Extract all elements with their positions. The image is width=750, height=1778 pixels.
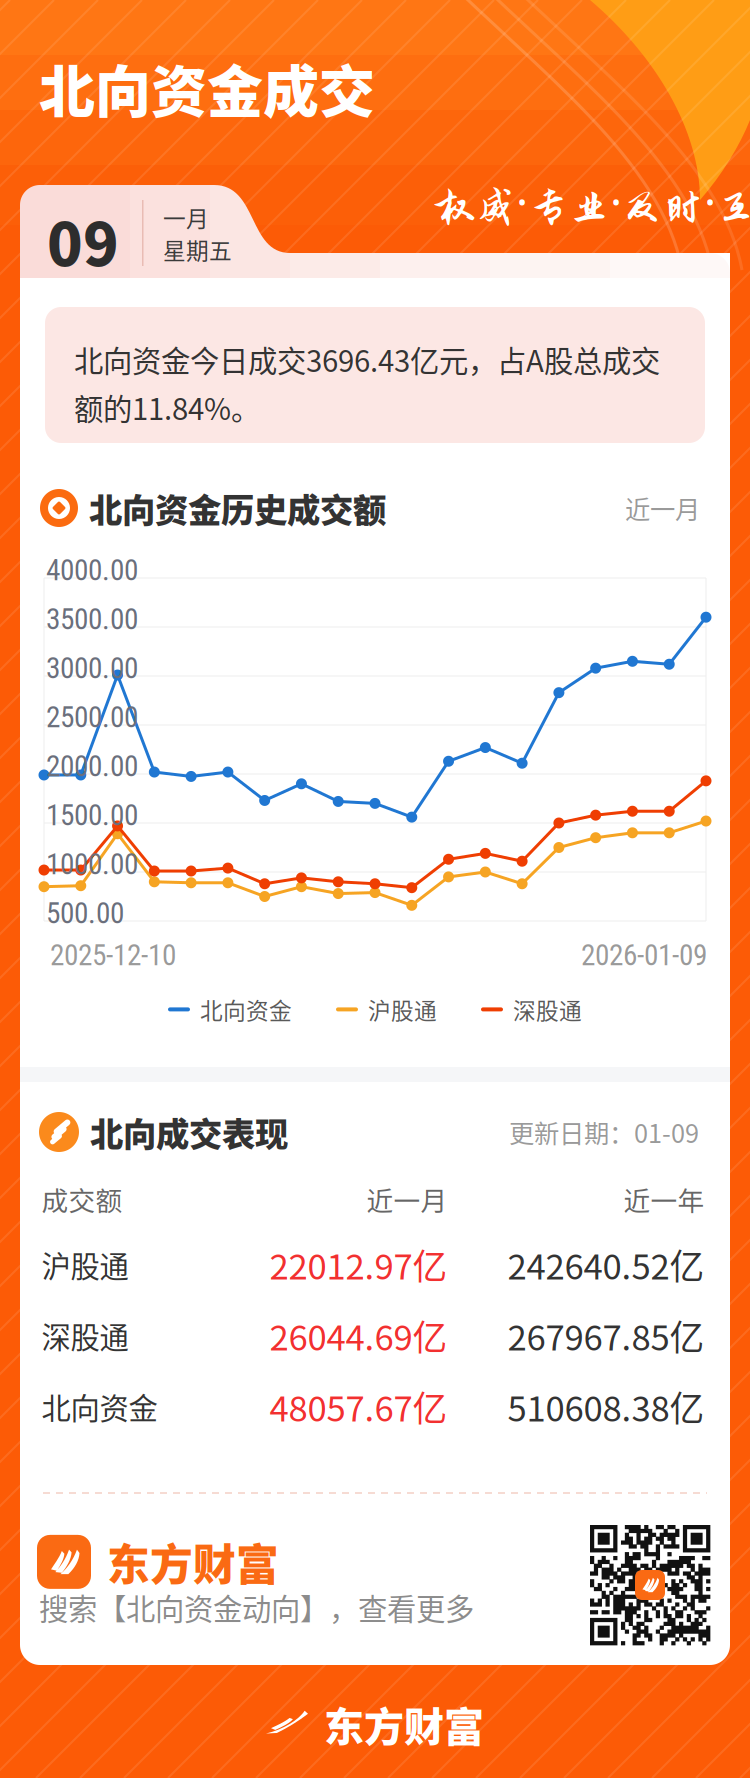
staticText: 深股通	[41, 1314, 128, 1357]
staticText: 深股通	[513, 993, 582, 1026]
staticText: 500.00	[46, 896, 124, 930]
staticText: 2025-12-10	[50, 938, 176, 972]
staticText: 26044.69亿	[269, 1310, 447, 1361]
staticText: 3000.00	[46, 651, 138, 685]
staticText: 沪股通	[368, 993, 437, 1026]
staticText: 一月	[163, 201, 209, 234]
staticText: 2000.00	[46, 749, 138, 783]
staticText: 北向资金历史成交额	[89, 484, 386, 532]
staticText: 510608.38亿	[507, 1381, 704, 1432]
staticText: 267967.85亿	[507, 1310, 704, 1361]
staticText: 近一年	[623, 1180, 704, 1218]
staticText: 成交额	[41, 1180, 122, 1218]
staticText: 近一月	[625, 490, 700, 526]
staticText: 近一月	[366, 1180, 447, 1218]
staticText: 4000.00	[46, 553, 138, 587]
staticText: 北向成交表现	[90, 1108, 288, 1156]
staticText: 北向资金	[200, 993, 292, 1026]
staticText: 北向资金今日成交3696.43亿元，占A股总成交	[74, 338, 660, 380]
staticText: 242640.52亿	[507, 1239, 704, 1290]
staticText: 额的11.84%。	[74, 386, 260, 428]
button[interactable]: 北向资金历史成交额	[40, 486, 700, 530]
button[interactable]: 北向成交表现	[39, 1111, 699, 1153]
staticText: 北向资金	[41, 1385, 157, 1428]
staticText: 2026-01-09	[581, 938, 707, 972]
staticText: 搜索【北向资金动向】，查看更多	[39, 1586, 474, 1628]
button[interactable]: 东方财富	[37, 1531, 279, 1593]
staticText: 1000.00	[46, 847, 138, 881]
staticText: 48057.67亿	[269, 1381, 447, 1432]
staticText: 沪股通	[41, 1243, 128, 1286]
staticText: 星期五	[163, 233, 232, 266]
staticText: 更新日期：01-09	[509, 1114, 699, 1150]
staticText: 22012.97亿	[269, 1239, 447, 1290]
staticText: 2500.00	[46, 700, 138, 734]
staticText: 东方财富	[107, 1531, 279, 1593]
staticText: 1500.00	[46, 798, 138, 832]
staticText: 东方财富	[324, 1695, 484, 1753]
staticText: 权威·专业·及时·互动	[434, 170, 750, 232]
staticText: 3500.00	[46, 602, 138, 636]
staticText: 09	[47, 198, 119, 283]
staticText: 北向资金成交	[39, 47, 375, 128]
